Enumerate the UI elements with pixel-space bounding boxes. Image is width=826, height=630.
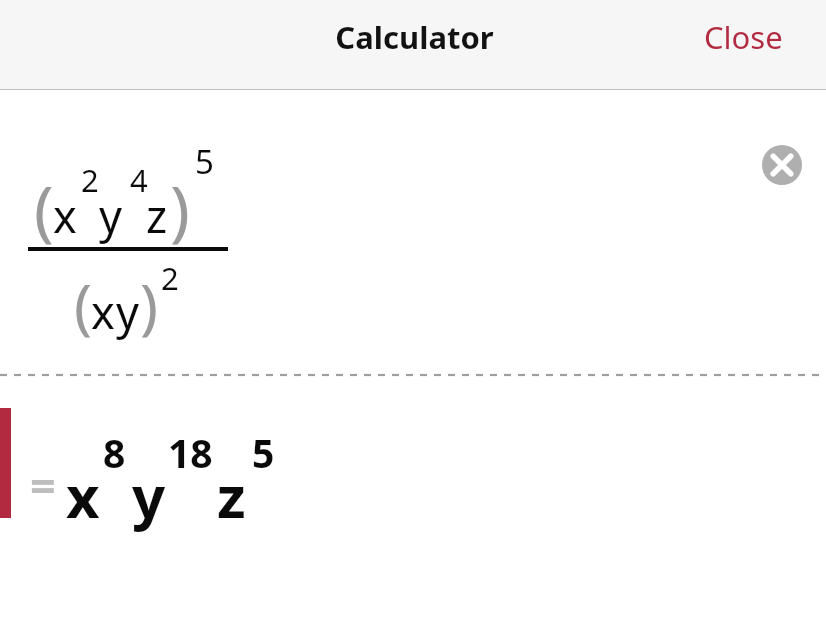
staticText: 8 <box>103 426 126 479</box>
staticText: z <box>146 185 168 246</box>
staticText: 4 <box>130 159 148 201</box>
button[interactable]: Clear expression <box>762 145 802 185</box>
button[interactable]: Close <box>686 11 800 63</box>
staticText: 5 <box>195 139 214 184</box>
staticText: = <box>30 454 56 515</box>
staticText: x <box>53 185 77 246</box>
staticText: x <box>91 281 115 342</box>
staticText: ( <box>34 163 54 253</box>
staticText: ( <box>74 264 92 346</box>
staticText: ) <box>140 264 158 346</box>
staticText: y <box>132 456 166 535</box>
staticText: Close <box>704 16 783 58</box>
staticText: y <box>99 185 122 246</box>
button[interactable]: Calculator <box>323 13 505 61</box>
staticText: ) <box>170 163 190 253</box>
staticText: 5 <box>252 426 275 479</box>
staticText: z <box>217 456 246 535</box>
staticText: 18 <box>168 426 213 479</box>
staticText: 2 <box>81 159 99 201</box>
staticText: x <box>66 456 100 535</box>
staticText: Calculator <box>335 16 494 58</box>
staticText: y <box>116 281 139 342</box>
staticText: 2 <box>161 257 179 299</box>
